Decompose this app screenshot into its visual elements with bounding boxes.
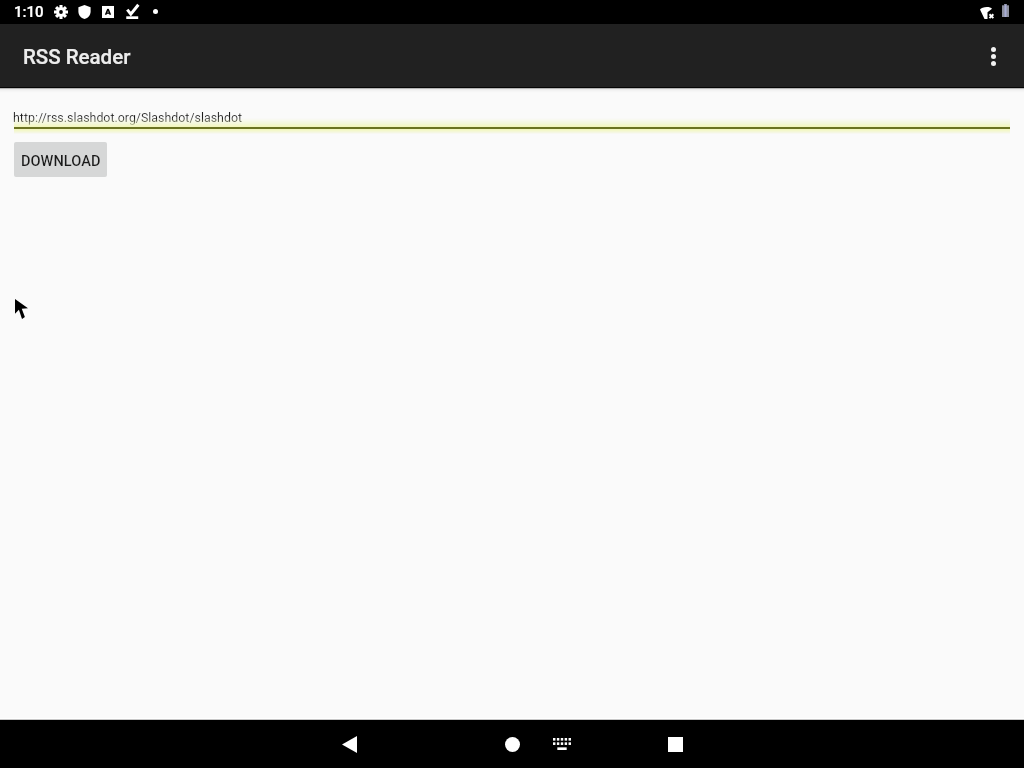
button[interactable]: Recent apps — [651, 720, 699, 768]
button[interactable]: Keyboard — [538, 720, 586, 768]
staticText: RSS Reader — [23, 45, 131, 69]
button[interactable]: Feed URL text field — [0, 96, 1024, 136]
button[interactable]: DOWNLOAD — [14, 142, 107, 177]
staticText: http://rss.slashdot.org/Slashdot/slashdo… — [13, 110, 243, 125]
staticText: 1:10 — [14, 3, 44, 21]
button[interactable]: More options — [969, 32, 1017, 80]
button[interactable]: Home — [488, 720, 536, 768]
button[interactable]: Back — [325, 720, 373, 768]
staticText: DOWNLOAD — [21, 152, 101, 169]
